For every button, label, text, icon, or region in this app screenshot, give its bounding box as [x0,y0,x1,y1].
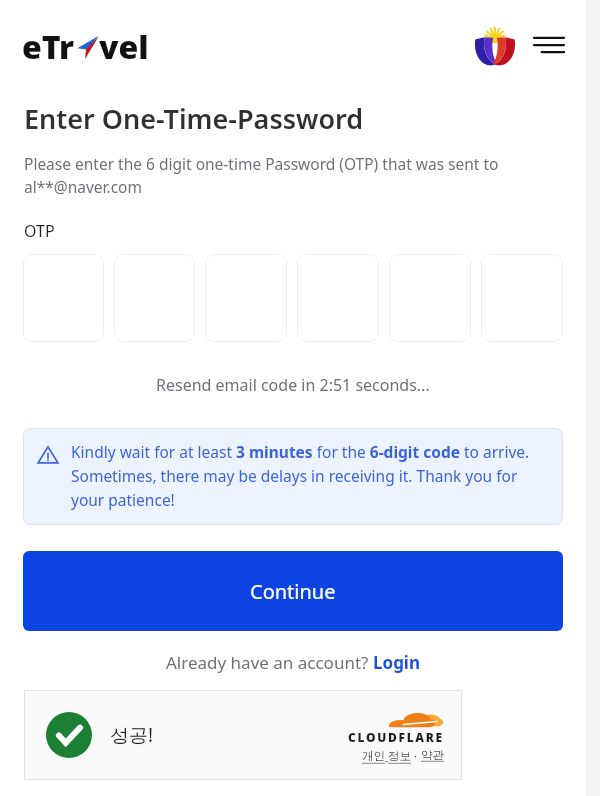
button[interactable]: OTP digit 2 [114,254,195,342]
button[interactable]: 개인 정보 [362,748,411,764]
staticText: · [411,748,421,764]
button[interactable]: OTP digit 5 [389,254,471,342]
button[interactable]: Continue [23,551,563,631]
staticText: Already have an account? [166,651,373,674]
button[interactable]: OTP digit 6 [481,254,563,342]
button[interactable]: 약관 [421,748,444,762]
staticText: Resend email code in 2:51 seconds... [156,374,430,396]
staticText: Enter One-Time-Password [24,100,364,137]
staticText: vel [99,25,149,65]
staticText: Login [373,651,421,674]
staticText: eTr [22,25,75,65]
button[interactable]: OTP digit 3 [205,254,287,342]
button[interactable]: Login [373,651,421,674]
staticText: 성공! [110,722,154,748]
staticText: Kindly wait for at least 3 minutes for t… [71,441,551,510]
staticText: CLOUDFLARE [348,729,444,745]
staticText: OTP [24,220,55,242]
button[interactable]: Menu [532,28,566,62]
button[interactable]: OTP digit 1 [23,254,104,342]
staticText: Continue [250,578,336,605]
button[interactable]: Philippines emblem [472,22,518,68]
button[interactable]: OTP digit 4 [297,254,379,342]
staticText: Please enter the 6 digit one-time Passwo… [24,153,552,198]
